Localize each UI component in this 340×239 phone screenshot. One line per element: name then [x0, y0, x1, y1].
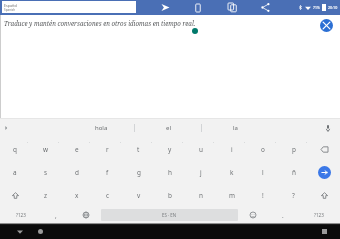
button[interactable]: hola [68, 119, 134, 137]
staticText: ' [182, 141, 183, 146]
button[interactable]: k [216, 161, 247, 184]
button[interactable]: Voice input [322, 122, 334, 134]
button[interactable]: f [92, 161, 123, 184]
staticText: x [75, 191, 79, 200]
staticText: . [282, 211, 284, 219]
staticText: ' [213, 141, 214, 146]
button[interactable]: Copy [189, 0, 207, 15]
staticText: ' [244, 141, 245, 146]
button[interactable]: u [185, 138, 216, 161]
staticText: w [43, 145, 49, 154]
staticText: h [168, 168, 172, 177]
button[interactable]: Home [32, 224, 48, 239]
button[interactable]: Emoji [238, 206, 268, 224]
staticText: f [106, 168, 109, 177]
button[interactable]: o [247, 138, 278, 161]
button[interactable]: Enter [309, 161, 340, 184]
staticText: ' [151, 141, 152, 146]
staticText: i [231, 145, 233, 154]
staticText: a [13, 168, 17, 177]
staticText: j [200, 168, 202, 177]
button[interactable]: ? [278, 184, 309, 206]
button[interactable]: ! [247, 184, 278, 206]
button[interactable]: q [0, 138, 30, 161]
staticText: hola [95, 124, 108, 132]
button[interactable]: s [30, 161, 61, 184]
staticText: v [137, 191, 141, 200]
button[interactable]: Copy all [223, 0, 241, 15]
button[interactable]: . [268, 206, 298, 224]
button[interactable]: h [154, 161, 185, 184]
staticText: m [229, 191, 235, 200]
staticText: , [55, 211, 57, 219]
staticText: ! [262, 191, 264, 200]
staticText: Traduce y mantén conversaciones en otros… [4, 19, 196, 27]
button[interactable]: b [154, 184, 185, 206]
button[interactable]: More suggestions [0, 122, 12, 134]
button[interactable]: m [216, 184, 247, 206]
staticText: o [261, 145, 265, 154]
button[interactable]: c [92, 184, 123, 206]
staticText: ' [89, 141, 90, 146]
staticText: k [230, 168, 234, 177]
staticText: ' [306, 141, 307, 146]
button[interactable]: , [41, 206, 71, 224]
button[interactable]: y [154, 138, 185, 161]
staticText: c [106, 191, 110, 200]
button[interactable]: e [61, 138, 92, 161]
staticText: 20:10 [328, 5, 338, 10]
button[interactable]: Shift [0, 184, 30, 206]
staticText: t [137, 145, 140, 154]
button[interactable]: i [216, 138, 247, 161]
staticText: q [13, 145, 17, 154]
staticText: z [44, 191, 48, 200]
button[interactable]: r [92, 138, 123, 161]
staticText: l [262, 168, 264, 177]
staticText: n [199, 191, 203, 200]
button[interactable]: Switch language [71, 206, 101, 224]
button[interactable]: p [278, 138, 309, 161]
staticText: u [199, 145, 203, 154]
button[interactable]: z [30, 184, 61, 206]
staticText: y [168, 145, 172, 154]
button[interactable]: Send [156, 0, 174, 15]
button[interactable]: ?123 [298, 206, 340, 224]
button[interactable]: Share [256, 0, 274, 15]
button[interactable]: g [123, 161, 154, 184]
staticText: e [75, 145, 79, 154]
button[interactable]: la [202, 119, 268, 137]
button[interactable]: el [135, 119, 201, 137]
staticText: Spanish [4, 8, 16, 12]
button[interactable]: Backspace [309, 138, 340, 161]
staticText: ?123 [16, 212, 26, 218]
button[interactable]: Recent apps [316, 224, 332, 239]
button[interactable]: j [185, 161, 216, 184]
button[interactable]: n [185, 184, 216, 206]
staticText: ' [275, 141, 276, 146]
button[interactable]: a [0, 161, 30, 184]
staticText: 71% [313, 5, 320, 10]
staticText: Español [4, 3, 18, 8]
staticText: ' [27, 141, 28, 146]
staticText: ? [292, 191, 295, 200]
staticText: ' [58, 141, 59, 146]
button[interactable]: Español [2, 1, 136, 13]
button[interactable]: ?123 [0, 206, 41, 224]
button[interactable]: d [61, 161, 92, 184]
staticText: b [168, 191, 172, 200]
button[interactable]: ñ [278, 161, 309, 184]
button[interactable]: Clear text [320, 19, 333, 32]
button[interactable]: w [30, 138, 61, 161]
staticText: g [137, 168, 141, 177]
staticText: el [166, 124, 171, 132]
button[interactable]: ES · EN [101, 209, 238, 221]
button[interactable]: l [247, 161, 278, 184]
staticText: la [233, 124, 238, 132]
button[interactable]: x [61, 184, 92, 206]
button[interactable]: t [123, 138, 154, 161]
staticText: ñ [292, 168, 296, 177]
staticText: s [44, 168, 48, 177]
button[interactable]: Hide keyboard [12, 224, 28, 239]
button[interactable]: Shift [309, 184, 340, 206]
button[interactable]: v [123, 184, 154, 206]
